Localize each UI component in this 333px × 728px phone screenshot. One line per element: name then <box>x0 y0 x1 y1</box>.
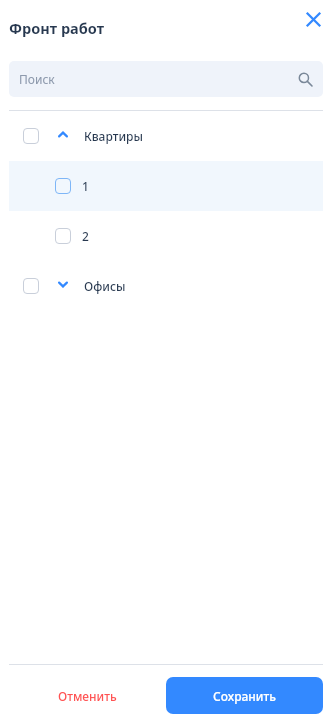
button[interactable]: Close <box>299 5 328 34</box>
staticText: Поиск <box>19 71 55 87</box>
staticText: 1 <box>82 178 89 194</box>
button[interactable]: Checkbox <box>23 128 39 144</box>
button[interactable]: Сохранить <box>166 677 323 714</box>
button[interactable]: Checkbox <box>23 278 39 294</box>
staticText: Офисы <box>84 278 126 294</box>
button[interactable]: Checkbox <box>55 228 71 244</box>
button[interactable]: Checkbox <box>55 178 71 194</box>
button[interactable]: Checkbox <box>0 211 333 261</box>
button[interactable]: Checkbox <box>0 161 333 211</box>
button[interactable]: Checkbox <box>0 111 333 161</box>
staticText: Квартиры <box>84 128 143 144</box>
staticText: Фронт работ <box>9 18 104 38</box>
button[interactable]: Поиск <box>9 61 323 97</box>
button[interactable]: Checkbox <box>0 261 333 311</box>
staticText: Отменить <box>58 688 117 704</box>
button[interactable]: Отменить <box>44 677 131 714</box>
staticText: Сохранить <box>213 688 276 704</box>
staticText: 2 <box>82 228 89 244</box>
